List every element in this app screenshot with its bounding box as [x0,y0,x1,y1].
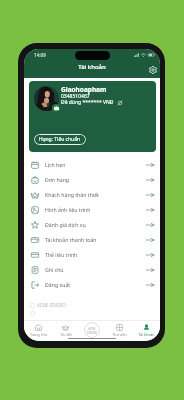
staticText: Đánh giá dịch vụ [45,221,86,228]
button[interactable]: Settings [147,64,158,75]
staticText: Khách hàng thân thiết [45,191,99,198]
staticText: Tài khoản [138,332,155,337]
button[interactable]: Thư viện [106,323,133,338]
button[interactable]: Khách hàng thân thiết [24,187,160,202]
staticText: Ghi chú [45,266,64,273]
button[interactable]: Hình ảnh liệu trình [24,202,160,217]
staticText: Hạng: Tiêu chuẩn [39,136,81,143]
button[interactable]: Change photo [52,104,60,112]
staticText: Đăng xuất [45,281,71,288]
button[interactable]: Đơn hàng [24,172,160,187]
staticText: Đơn hàng [45,176,70,183]
button[interactable]: Tài khoản thanh toán [24,232,160,247]
button[interactable]: Tài khoản [133,323,160,338]
staticText: Giaohoapham [61,85,107,94]
button[interactable]: Hạng: Tiêu chuẩn [34,134,86,145]
button[interactable]: Lịch hẹn [24,157,160,172]
staticText: Tài khoản [24,63,160,71]
button[interactable]: Show amount [116,99,123,106]
staticText: Đã dùng ******* VNĐ [61,99,114,106]
staticText: 14:09 [34,52,46,58]
staticText: Tài khoản thanh toán [45,236,97,243]
button[interactable]: Đặt lịch [84,322,100,338]
button[interactable]: Change photo [29,81,156,152]
staticText: Thẻ liệu trình [45,251,78,258]
button[interactable]: Trang chủ [24,323,52,338]
staticText: ACNE STUDIO [87,327,97,334]
staticText: Lịch hẹn [45,161,66,168]
staticText: Trang chủ [30,332,47,337]
staticText: ACNE STUDIO [37,302,66,308]
staticText: 0348510467 [61,93,90,100]
button[interactable]: Đánh giá dịch vụ [24,217,160,232]
button[interactable]: Đăng xuất [24,277,160,292]
staticText: Thư viện [112,332,127,337]
button[interactable]: Ưu đãi [52,323,79,338]
staticText: Hình ảnh liệu trình [45,206,91,213]
staticText: Ưu đãi [60,332,72,337]
button[interactable]: Ghi chú [24,262,160,277]
button[interactable]: Thẻ liệu trình [24,247,160,262]
